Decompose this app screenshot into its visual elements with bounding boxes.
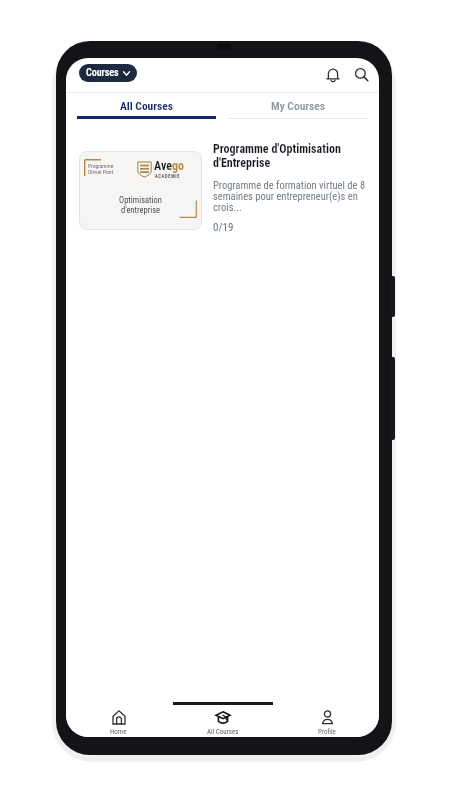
staticText: My Courses [271, 99, 325, 112]
button[interactable]: My Courses [228, 92, 368, 119]
staticText: Profile [318, 728, 336, 736]
staticText: Programme de formation virtuel de 8 sema… [213, 179, 366, 213]
staticText: All Courses [120, 99, 174, 112]
staticText: Courses [86, 67, 119, 79]
button[interactable]: Courses [79, 64, 137, 82]
staticText: Programme Olivier Pont [88, 163, 114, 175]
button[interactable]: Home [66, 710, 171, 737]
button[interactable]: Programme Olivier Pont [79, 151, 373, 235]
staticText: Optimisation d'entreprise [119, 195, 162, 215]
staticText: All Courses [207, 728, 239, 736]
staticText: Home [110, 728, 127, 736]
staticText: Programme d'Optimisation d'Entreprise [213, 142, 341, 170]
button[interactable]: All Courses [171, 710, 275, 737]
staticText: 0/19 [213, 221, 234, 234]
button[interactable] [320, 62, 345, 87]
staticText: ACADEMIE [155, 174, 181, 179]
staticText: Avego [154, 159, 184, 173]
button[interactable] [349, 62, 374, 87]
button[interactable]: All Courses [77, 92, 216, 119]
button[interactable]: Profile [275, 710, 379, 737]
